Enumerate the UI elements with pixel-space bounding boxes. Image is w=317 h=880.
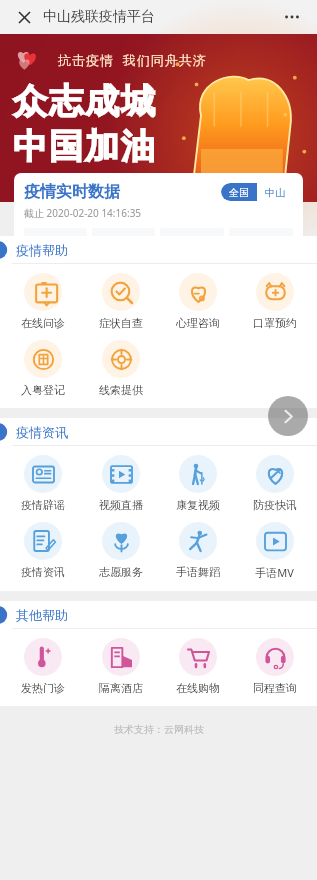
button[interactable]: 1277	[92, 228, 155, 275]
button[interactable]: 康复视频	[159, 450, 236, 517]
staticText: 在线问诊	[21, 316, 65, 330]
button[interactable]: 志愿服务	[82, 517, 159, 584]
staticText: 在线购物	[176, 681, 220, 695]
staticText: 技术支持：云网科技	[114, 723, 204, 736]
button[interactable]: 症状自查	[82, 268, 159, 335]
button[interactable]: 防疫快讯	[236, 450, 313, 517]
staticText: 心理咨询	[176, 316, 220, 330]
button[interactable]: 在线问诊	[4, 268, 82, 335]
staticText: 团结一致 / 抗击病毒 / 美好明天	[20, 187, 103, 195]
button[interactable]: 视频直播	[82, 450, 159, 517]
button[interactable]: 同程查询	[236, 633, 313, 700]
staticText: 同程查询	[253, 681, 297, 695]
staticText: 中国加油	[12, 125, 156, 168]
button[interactable]: More options	[281, 6, 303, 28]
staticText: 志愿服务	[99, 565, 143, 579]
button[interactable]: 手语舞蹈	[159, 517, 236, 584]
button[interactable]: 疫情辟谣	[4, 450, 82, 517]
staticText: 74677	[34, 234, 77, 254]
staticText: 症状自查	[99, 316, 143, 330]
staticText: 疫情资讯	[21, 565, 65, 579]
staticText: 死亡	[251, 256, 271, 269]
staticText: 确诊	[46, 256, 66, 269]
button[interactable]: 中山	[257, 183, 293, 201]
staticText: 中山残联疫情平台	[43, 8, 155, 26]
staticText: 视频直播	[99, 498, 143, 512]
staticText: 全国	[229, 186, 249, 199]
button[interactable]: 74677	[24, 228, 87, 275]
button[interactable]: 线索提供	[82, 335, 159, 402]
staticText: 隔离酒店	[99, 681, 143, 695]
button[interactable]: Close	[14, 7, 34, 27]
staticText: 口罩预约	[253, 316, 297, 330]
button[interactable]: 发热门诊	[4, 633, 82, 700]
staticText: 疑似	[114, 256, 134, 269]
staticText: 向前线工作的医护人员致敬！	[20, 175, 111, 184]
staticText: 抗击疫情 我们同舟共济	[58, 51, 207, 69]
staticText: 入粤登记	[21, 383, 65, 397]
button[interactable]: 2121	[229, 228, 293, 275]
button[interactable]: Next	[268, 396, 308, 436]
button[interactable]: 16287	[160, 228, 224, 275]
staticText: 治愈	[182, 256, 202, 269]
staticText: 其他帮助	[16, 607, 68, 623]
staticText: 众志成城	[12, 80, 156, 123]
staticText: 康复视频	[176, 498, 220, 512]
button[interactable]: 全国	[221, 183, 257, 201]
button[interactable]: 手语MV	[236, 517, 313, 585]
button[interactable]: 在线购物	[159, 633, 236, 700]
button[interactable]: 入粤登记	[4, 335, 82, 402]
staticText: 发热门诊	[21, 681, 65, 695]
button[interactable]: 心理咨询	[159, 268, 236, 335]
staticText: 疫情辟谣	[21, 498, 65, 512]
staticText: 疫情实时数据	[24, 182, 120, 202]
staticText: 线索提供	[99, 383, 143, 397]
staticText: 中山	[265, 186, 285, 199]
staticText: 手语MV	[255, 565, 294, 580]
button[interactable]: 隔离酒店	[82, 633, 159, 700]
staticText: 手语舞蹈	[176, 565, 220, 579]
staticText: 截止 2020-02-20 14:16:35	[24, 206, 142, 220]
staticText: 防疫快讯	[253, 498, 297, 512]
staticText: 疫情资讯	[16, 424, 68, 440]
button[interactable]: 疫情资讯	[4, 517, 82, 584]
button[interactable]: 口罩预约	[236, 268, 313, 335]
staticText: 疫情帮助	[16, 242, 68, 258]
